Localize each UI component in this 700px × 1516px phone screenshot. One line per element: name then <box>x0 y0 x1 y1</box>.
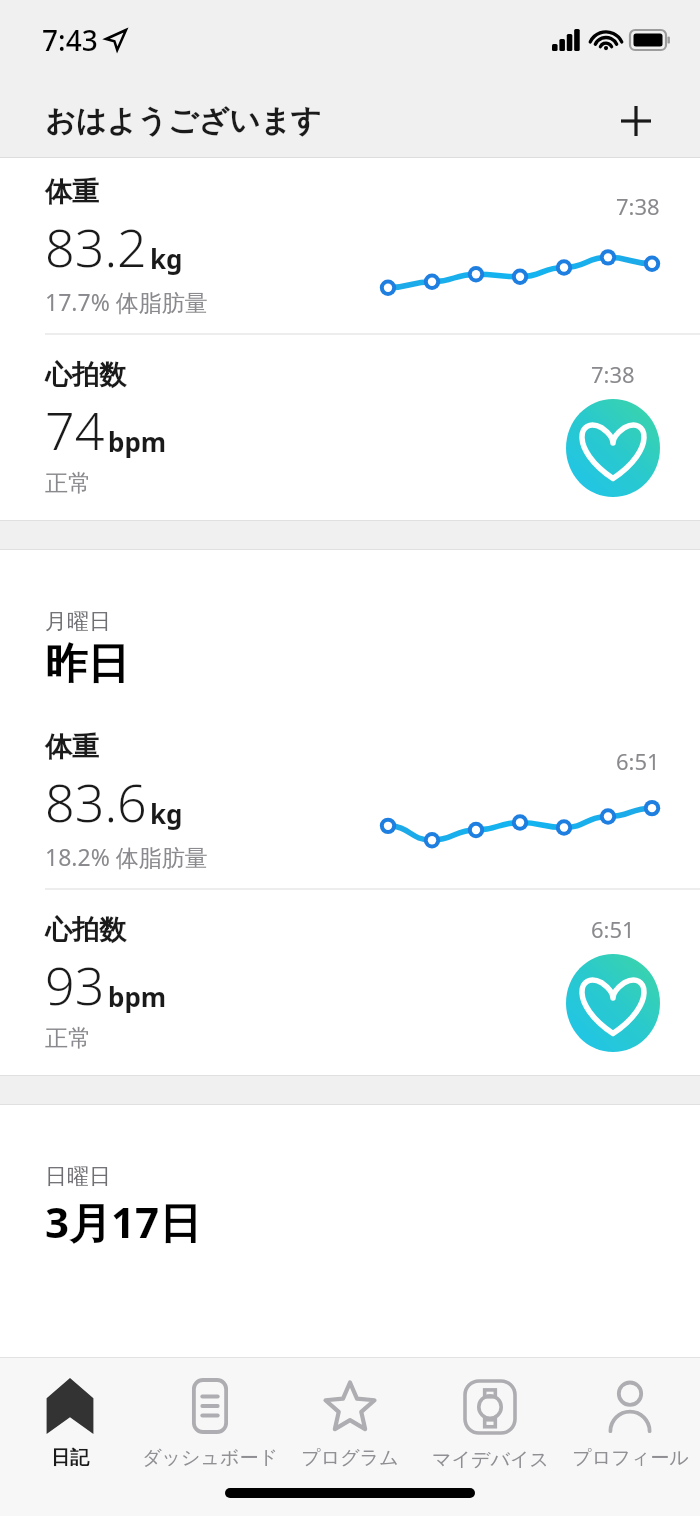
staticText: 83.2 <box>45 211 147 282</box>
staticText: 17.7% 体脂肪量 <box>45 286 208 317</box>
staticText: 正常 <box>45 1024 91 1053</box>
staticText: 心拍数 <box>45 913 126 947</box>
button[interactable]: 体重 <box>0 713 700 888</box>
staticText: 正常 <box>45 469 91 498</box>
button[interactable]: マイデバイス <box>420 1370 560 1516</box>
staticText: 18.2% 体脂肪量 <box>45 841 208 872</box>
staticText: 74 <box>45 394 105 465</box>
staticText: 体重 <box>45 730 99 764</box>
staticText: 日記 <box>51 1446 89 1470</box>
staticText: bpm <box>108 979 167 1014</box>
staticText: 体重 <box>45 175 99 209</box>
staticText: 昨日 <box>45 638 129 691</box>
staticText: プロフィール <box>572 1446 689 1470</box>
staticText: kg <box>150 796 183 831</box>
button[interactable]: プログラム <box>280 1370 420 1516</box>
staticText: マイデバイス <box>432 1448 549 1472</box>
staticText: 93 <box>45 949 105 1020</box>
staticText: bpm <box>108 424 167 459</box>
staticText: プログラム <box>301 1446 399 1470</box>
button[interactable]: ダッシュボード <box>140 1370 280 1516</box>
button[interactable]: 心拍数 <box>0 890 700 1075</box>
button[interactable]: プロフィール <box>560 1370 700 1516</box>
staticText: kg <box>150 241 183 276</box>
staticText: 月曜日 <box>45 608 111 636</box>
staticText: 心拍数 <box>45 358 126 392</box>
staticText: 7:38 <box>616 191 660 221</box>
staticText: 83.6 <box>45 766 147 837</box>
staticText: ダッシュボード <box>142 1446 278 1470</box>
button[interactable]: 追加 <box>612 97 660 145</box>
button[interactable]: 体重 <box>0 158 700 333</box>
staticText: 7:38 <box>591 359 635 389</box>
button[interactable]: 心拍数 <box>0 335 700 520</box>
button[interactable]: 日記 <box>0 1370 140 1516</box>
staticText: 7:43 <box>42 21 98 59</box>
staticText: 6:51 <box>616 746 660 776</box>
staticText: 6:51 <box>591 914 635 944</box>
staticText: 日曜日 <box>45 1163 111 1191</box>
staticText: 3月17日 <box>45 1193 202 1250</box>
staticText: おはようございます <box>45 102 612 140</box>
